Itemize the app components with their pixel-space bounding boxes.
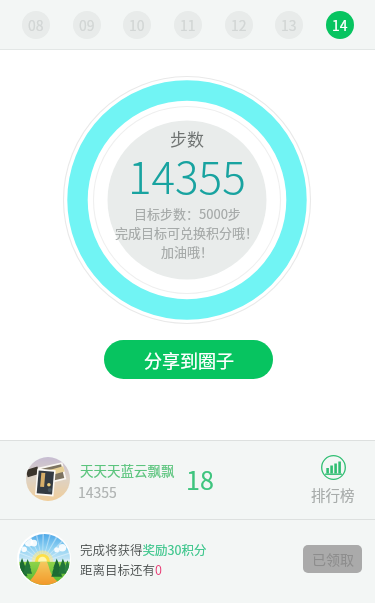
staticText: 目标步数：5000步 [134, 204, 241, 223]
staticText: 距离目标还有0 [80, 560, 162, 578]
button[interactable]: 10 [115, 2, 159, 47]
staticText: 10 [129, 15, 145, 35]
staticText: 排行榜 [311, 484, 355, 505]
staticText: 08 [28, 15, 44, 35]
staticText: 13 [281, 15, 297, 35]
staticText: 天天天蓝云飘飘 [80, 460, 175, 480]
staticText: 14 [332, 15, 348, 35]
staticText: 14355 [78, 482, 117, 502]
staticText: 完成目标可兑换积分哦！ [115, 223, 259, 242]
staticText: 已领取 [312, 549, 354, 569]
button[interactable]: 08 [14, 2, 58, 47]
button[interactable]: 天天天蓝云飘飘 [0, 441, 375, 519]
staticText: 11 [180, 15, 196, 35]
staticText: 09 [79, 15, 95, 35]
button[interactable]: 分享到圈子 [104, 340, 273, 379]
staticText: 18 [186, 461, 214, 497]
button[interactable]: 已领取 [303, 545, 362, 573]
staticText: 完成将获得奖励30积分 [80, 540, 207, 558]
button[interactable]: 13 [267, 2, 311, 47]
button[interactable]: 09 [65, 2, 109, 47]
staticText: 步数 [170, 126, 204, 151]
staticText: 分享到圈子 [144, 347, 234, 373]
button[interactable]: 14 [318, 2, 362, 47]
staticText: 12 [231, 15, 247, 35]
staticText: 加油哦！ [161, 242, 214, 261]
button[interactable]: 排行榜 [305, 455, 361, 505]
button[interactable]: 11 [166, 2, 210, 47]
staticText: 14355 [128, 143, 246, 207]
button[interactable]: 12 [217, 2, 261, 47]
